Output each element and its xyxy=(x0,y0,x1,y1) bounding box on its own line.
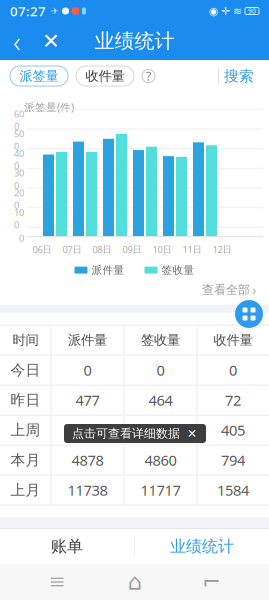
staticText: 收件量 xyxy=(213,332,252,348)
staticText: 10日 xyxy=(152,243,171,256)
button[interactable]: 昨日 xyxy=(0,386,268,415)
staticText: 4878 xyxy=(71,450,103,470)
staticText: ✕ xyxy=(187,427,197,440)
button[interactable]: 返回 xyxy=(0,22,34,60)
staticText: 派签量(件) xyxy=(24,100,74,114)
staticText: 收件量 xyxy=(85,68,124,84)
button[interactable]: 搜索 xyxy=(219,61,259,91)
staticText: ✈ xyxy=(51,6,59,16)
staticText: 1584 xyxy=(217,480,249,500)
staticText: 账单 xyxy=(51,537,83,556)
staticText: 时间 xyxy=(12,332,38,348)
staticText: › xyxy=(252,280,257,299)
staticText: 794 xyxy=(221,450,245,470)
staticText: ◉ xyxy=(209,5,218,17)
staticText: ≋ xyxy=(233,5,242,17)
staticText: 派件量 xyxy=(91,264,124,277)
staticText: ? xyxy=(146,68,151,84)
staticText: 0 xyxy=(83,360,91,380)
staticText: 90 xyxy=(248,7,256,15)
button[interactable]: 账单 xyxy=(0,529,134,564)
staticText: 点击可查看详细数据 xyxy=(72,426,180,441)
staticText: 派件量 xyxy=(68,332,107,348)
button[interactable]: 关闭 xyxy=(34,22,68,60)
staticText: ✛ xyxy=(221,5,230,17)
staticText: ‹ xyxy=(13,21,21,60)
staticText: ✕ xyxy=(42,29,60,53)
staticText: 300 xyxy=(14,167,24,192)
staticText: 本月 xyxy=(10,451,40,469)
staticText: 4860 xyxy=(144,450,176,470)
button[interactable]: 返回 xyxy=(192,564,232,600)
staticText: 11738 xyxy=(67,480,107,500)
staticText: 11717 xyxy=(140,480,180,500)
staticText: 上周 xyxy=(10,421,40,439)
staticText: 搜索 xyxy=(224,67,254,85)
staticText: 业绩统计 xyxy=(94,29,174,53)
staticText: 查看全部 xyxy=(202,282,250,297)
button[interactable]: 本月 xyxy=(0,446,268,475)
staticText: 200 xyxy=(14,186,24,211)
button[interactable]: 关闭提示 xyxy=(186,426,198,440)
staticText: 100 xyxy=(14,206,24,231)
button[interactable]: 派签量 xyxy=(10,66,68,86)
staticText: 0 xyxy=(156,360,164,380)
staticText: 464 xyxy=(148,390,172,410)
button[interactable]: 帮助 xyxy=(142,69,155,82)
staticText: ⌂ xyxy=(127,569,141,595)
button[interactable]: 主屏幕 xyxy=(114,564,154,600)
staticText: 业绩统计 xyxy=(170,537,234,556)
button[interactable]: 业绩统计 xyxy=(135,529,269,564)
staticText: ⌐ xyxy=(202,569,221,595)
staticText: 签收量 xyxy=(161,264,194,277)
staticText: 500 xyxy=(14,127,24,152)
staticText: 昨日 xyxy=(10,391,40,409)
staticText: 06日 xyxy=(32,243,51,256)
staticText: 12日 xyxy=(212,243,231,256)
button[interactable]: 查看全部 xyxy=(194,279,265,301)
staticText: 上月 xyxy=(10,481,40,499)
button[interactable]: 时间 xyxy=(0,326,268,355)
button[interactable]: 上月 xyxy=(0,476,268,505)
button[interactable]: 今日 xyxy=(0,356,268,385)
button[interactable]: 收件量 xyxy=(76,66,134,86)
staticText: 签收量 xyxy=(141,332,180,348)
staticText: 600 xyxy=(14,108,24,133)
staticText: 11日 xyxy=(182,243,201,256)
staticText: 2715 xyxy=(71,420,103,440)
staticText: 400 xyxy=(14,147,24,172)
button[interactable]: 最近任务 xyxy=(37,564,77,600)
staticText: 08日 xyxy=(92,243,111,256)
staticText: 09日 xyxy=(122,243,141,256)
button[interactable]: 更多功能 xyxy=(235,300,263,328)
staticText: 07日 xyxy=(62,243,81,256)
staticText: 今日 xyxy=(10,361,40,379)
staticText: 2706 xyxy=(144,420,176,440)
staticText: 0 xyxy=(229,360,237,380)
staticText: 405 xyxy=(221,420,245,440)
staticText: 0 xyxy=(19,232,24,244)
staticText: 477 xyxy=(75,390,99,410)
staticText: 07:27 xyxy=(10,2,46,20)
staticText: 72 xyxy=(225,390,241,410)
staticText: 派签量 xyxy=(19,68,58,84)
button[interactable]: 上周 xyxy=(0,416,268,445)
